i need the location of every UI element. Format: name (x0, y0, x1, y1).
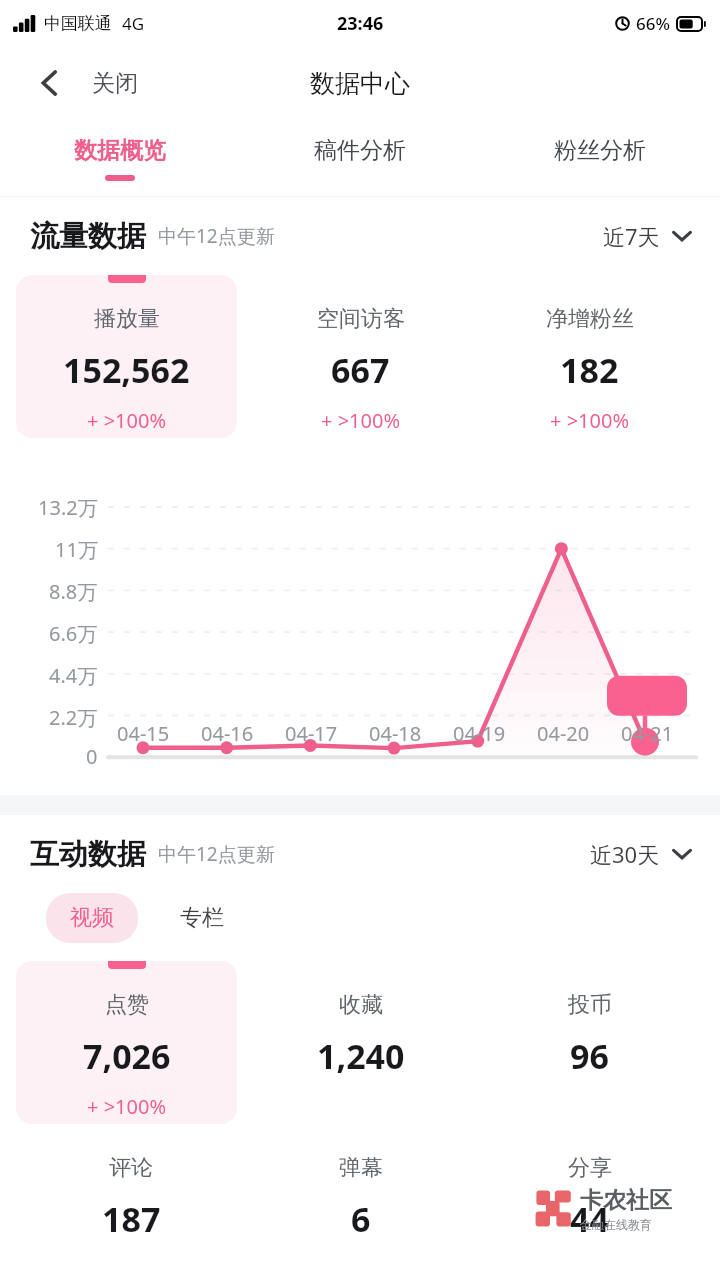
button[interactable]: 分享 (475, 1124, 704, 1264)
staticText: 点赞 (105, 991, 149, 1019)
staticText: 04-18 (369, 720, 422, 747)
staticText: 投币 (568, 991, 612, 1019)
staticText: 4.4万 (49, 662, 98, 689)
staticText: 中午12点更新 (158, 841, 275, 867)
staticText: 分享 (568, 1154, 612, 1182)
staticText: 04-21 (621, 720, 674, 747)
button[interactable]: 收藏 (246, 961, 475, 1101)
button[interactable]: 视频 (46, 893, 138, 943)
staticText: 数据概览 (74, 136, 166, 165)
staticText: 11万 (55, 536, 98, 563)
button[interactable]: 净增粉丝 (475, 275, 704, 438)
staticText: 04-20 (537, 720, 590, 747)
button[interactable]: 近7天 (603, 213, 692, 259)
staticText: 互动数据 (30, 836, 146, 873)
staticText: 弹幕 (339, 1154, 383, 1182)
button[interactable]: 专栏 (166, 893, 238, 943)
staticText: + >100% (550, 407, 630, 434)
staticText: 182 (560, 347, 619, 393)
staticText: 13.2万 (38, 494, 98, 521)
staticText: 中国联通 (44, 13, 112, 34)
staticText: 04-15 (117, 720, 170, 747)
staticText: 近30天 (590, 839, 660, 869)
button[interactable]: 数据概览 (0, 120, 240, 196)
staticText: 23:46 (337, 11, 384, 36)
button[interactable]: 关闭 (78, 59, 152, 108)
staticText: 8.8万 (49, 578, 98, 605)
staticText: 6.6万 (49, 620, 98, 647)
staticText: 视频 (70, 904, 114, 932)
staticText: 187 (102, 1196, 161, 1242)
staticText: 金融在线教育 (580, 1217, 652, 1232)
staticText: 152,562 (63, 347, 190, 393)
button[interactable]: 近30天 (590, 831, 692, 877)
staticText: 4G (122, 12, 145, 35)
staticText: 66% (636, 12, 670, 35)
staticText: 空间访客 (317, 305, 405, 333)
staticText: 流量数据 (30, 218, 146, 255)
staticText: 播放量 (94, 305, 160, 333)
staticText: + >100% (87, 1093, 167, 1120)
button[interactable]: 投币 (475, 961, 704, 1101)
staticText: 近7天 (603, 221, 660, 251)
button[interactable]: Back (22, 55, 78, 111)
button[interactable]: 粉丝分析 (480, 120, 720, 196)
staticText: 粉丝分析 (554, 136, 646, 165)
staticText: 04-17 (285, 720, 338, 747)
staticText: 2.2万 (49, 704, 98, 731)
staticText: 7,026 (83, 1033, 171, 1079)
button[interactable]: 播放量 (16, 275, 237, 438)
staticText: 净增粉丝 (546, 305, 634, 333)
staticText: 96 (570, 1033, 609, 1079)
button[interactable]: 点赞 (16, 961, 237, 1124)
staticText: 44 (570, 1196, 609, 1242)
staticText: 收藏 (339, 991, 383, 1019)
staticText: 0 (86, 743, 98, 770)
staticText: 关闭 (92, 69, 138, 98)
button[interactable]: 空间访客 (246, 275, 475, 438)
staticText: 稿件分析 (314, 136, 406, 165)
staticText: 数据中心 (310, 68, 410, 99)
staticText: 评论 (109, 1154, 153, 1182)
staticText: 667 (331, 347, 390, 393)
staticText: 1,240 (317, 1033, 405, 1079)
staticText: + >100% (321, 407, 401, 434)
staticText: 卡农社区 (580, 1186, 672, 1215)
staticText: 04-19 (453, 720, 506, 747)
staticText: + >100% (87, 407, 167, 434)
button[interactable]: 评论 (16, 1124, 246, 1264)
button[interactable]: 弹幕 (246, 1124, 475, 1264)
staticText: 6 (351, 1196, 371, 1242)
button[interactable]: 稿件分析 (240, 120, 480, 196)
staticText: 04-16 (201, 720, 254, 747)
staticText: 中午12点更新 (158, 223, 275, 249)
staticText: 专栏 (180, 904, 224, 932)
